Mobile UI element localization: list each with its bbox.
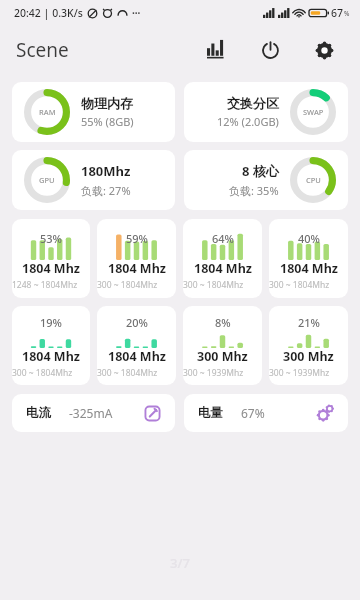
staticText: 1804 Mhz — [194, 260, 252, 277]
staticText: 3/7 — [170, 554, 190, 572]
staticText: Scene — [16, 37, 69, 63]
staticText: 19% — [40, 315, 62, 330]
staticText: 53% — [40, 231, 62, 246]
button[interactable]: 19% — [12, 306, 90, 385]
button[interactable]: 20% — [97, 306, 176, 385]
button[interactable]: 交换分区 — [184, 82, 348, 142]
staticText: 300 Mhz — [283, 348, 334, 365]
staticText: 300 ~ 1939Mhz — [269, 367, 348, 378]
staticText: 物理内存 — [81, 95, 133, 111]
button[interactable]: Statistics — [196, 30, 236, 70]
staticText: % — [344, 9, 350, 18]
staticText: 8 核心 — [242, 162, 279, 180]
button[interactable]: 8% — [183, 306, 262, 385]
button[interactable]: 电量 — [184, 394, 348, 432]
staticText: CPU — [306, 175, 321, 185]
button[interactable]: 40% — [269, 219, 348, 298]
staticText: 负载: 27% — [81, 183, 131, 198]
staticText: SWAP — [303, 107, 324, 117]
button[interactable]: Battery settings — [314, 402, 336, 424]
staticText: 1804 Mhz — [22, 260, 80, 277]
button[interactable]: 电流 — [12, 394, 175, 432]
staticText: 1804 Mhz — [108, 348, 166, 365]
staticText: 300 ~ 1804Mhz — [97, 367, 176, 378]
button[interactable]: 8 核心 — [184, 150, 348, 210]
staticText: 300 ~ 1939Mhz — [183, 367, 262, 378]
button[interactable]: Settings — [304, 30, 344, 70]
button[interactable]: RAM — [12, 82, 175, 142]
staticText: 67 — [331, 6, 344, 20]
staticText: RAM — [39, 107, 56, 117]
staticText: 64% — [212, 231, 234, 246]
staticText: 300 ~ 1804Mhz — [269, 279, 348, 291]
button[interactable]: Edit current — [141, 402, 163, 424]
staticText: 20:42 | 0.3K/s — [14, 6, 83, 20]
button[interactable]: 21% — [269, 306, 348, 385]
button[interactable]: 64% — [183, 219, 262, 298]
button[interactable]: GPU — [12, 150, 175, 210]
staticText: 300 ~ 1804Mhz — [97, 279, 176, 291]
staticText: -325mA — [69, 405, 113, 421]
staticText: 1804 Mhz — [108, 260, 166, 277]
staticText: 180Mhz — [81, 162, 131, 180]
button[interactable]: 53% — [12, 219, 90, 298]
staticText: 1248 ~ 1804Mhz — [12, 279, 90, 291]
staticText: 20% — [126, 315, 148, 330]
staticText: ··· — [132, 6, 141, 20]
staticText: 21% — [298, 315, 320, 330]
button[interactable]: 59% — [97, 219, 176, 298]
staticText: GPU — [39, 175, 55, 185]
staticText: 电流 — [26, 405, 51, 421]
staticText: 59% — [126, 231, 148, 246]
staticText: 电量 — [198, 405, 223, 421]
staticText: 300 ~ 1804Mhz — [183, 279, 262, 291]
button[interactable]: Power — [250, 30, 290, 70]
staticText: 12% (2.0GB) — [217, 114, 279, 129]
staticText: 300 ~ 1804Mhz — [12, 367, 90, 378]
staticText: 交换分区 — [227, 95, 279, 111]
staticText: 负载: 35% — [229, 183, 279, 198]
staticText: 55% (8GB) — [81, 114, 134, 129]
staticText: 40% — [298, 231, 320, 246]
staticText: 67% — [241, 405, 265, 421]
staticText: 8% — [215, 315, 231, 330]
staticText: 1804 Mhz — [22, 348, 80, 365]
staticText: 1804 Mhz — [280, 260, 338, 277]
staticText: 300 Mhz — [197, 348, 248, 365]
